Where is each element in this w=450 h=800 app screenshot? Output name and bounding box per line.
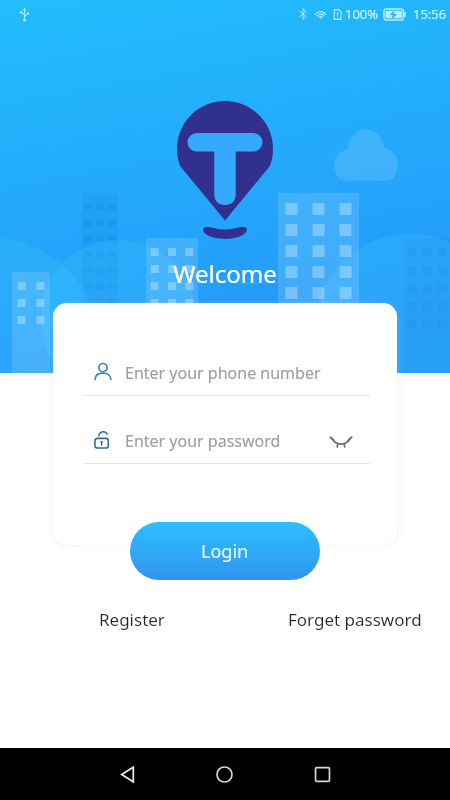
staticText: Register (99, 608, 165, 631)
staticText: Enter your phone number (125, 362, 321, 384)
staticText: Login (201, 539, 249, 564)
staticText: 100% (345, 5, 379, 23)
button[interactable]: Login (130, 522, 320, 580)
button[interactable]: Show password (325, 425, 357, 457)
button[interactable]: Home (198, 748, 250, 800)
button[interactable]: Recent apps (296, 748, 348, 800)
staticText: Welcome (0, 257, 450, 290)
button[interactable]: Back (101, 748, 153, 800)
staticText: 15:56 (413, 5, 447, 23)
staticText: Forget password (288, 608, 422, 631)
staticText: Enter your password (125, 430, 281, 452)
button[interactable]: Register (99, 608, 165, 631)
button[interactable]: Forget password (288, 608, 422, 631)
